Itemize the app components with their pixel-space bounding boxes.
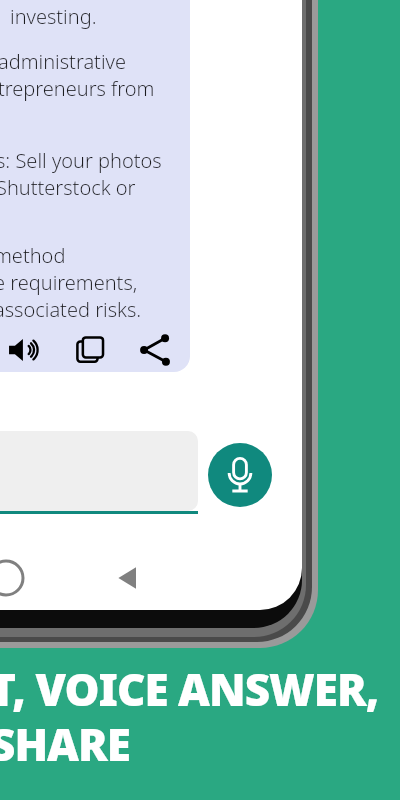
button[interactable]: Copy bbox=[69, 329, 111, 371]
staticText: method e requirements, associated risks. bbox=[0, 242, 142, 323]
staticText: T, VOICE ANSWER, bbox=[0, 659, 379, 719]
staticText: SHARE bbox=[0, 714, 130, 774]
button[interactable] bbox=[0, 0, 190, 372]
button[interactable]: Back bbox=[108, 558, 148, 598]
staticText: s: Sell your photos Shutterstock or bbox=[0, 147, 162, 201]
button[interactable]: Speak bbox=[4, 329, 46, 371]
button[interactable]: Share bbox=[134, 329, 176, 371]
button[interactable]: Home bbox=[0, 558, 26, 598]
button[interactable]: Voice input bbox=[208, 443, 272, 507]
staticText: administrative trepreneurs from bbox=[0, 48, 155, 102]
staticText: investing. bbox=[10, 3, 97, 30]
